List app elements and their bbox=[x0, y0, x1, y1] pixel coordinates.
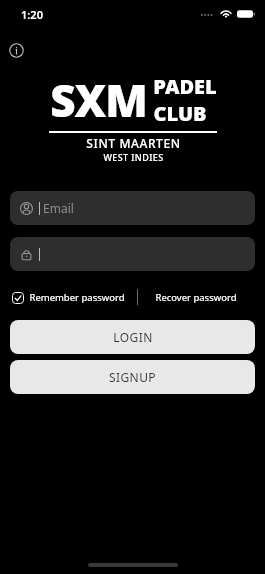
button[interactable]: Remember password bbox=[12, 291, 125, 304]
staticText: SXM bbox=[50, 70, 147, 130]
button[interactable]: Information bbox=[6, 40, 26, 60]
button[interactable]: SIGNUP bbox=[10, 360, 255, 394]
staticText: Email bbox=[43, 200, 74, 216]
staticText: WEST INDIES bbox=[103, 151, 164, 163]
staticText: 1:20 bbox=[21, 7, 43, 22]
button[interactable]: Recover password bbox=[138, 288, 253, 306]
staticText: LOGIN bbox=[113, 329, 153, 345]
button[interactable] bbox=[10, 237, 255, 271]
staticText: CLUB bbox=[153, 100, 207, 127]
staticText: PADEL bbox=[153, 73, 217, 100]
staticText: SINT MAARTEN bbox=[86, 135, 181, 151]
button[interactable]: LOGIN bbox=[10, 320, 255, 354]
button[interactable]: Email bbox=[10, 191, 255, 225]
staticText: Recover password bbox=[155, 291, 237, 304]
staticText: SIGNUP bbox=[109, 369, 156, 385]
staticText: Remember password bbox=[29, 291, 125, 304]
